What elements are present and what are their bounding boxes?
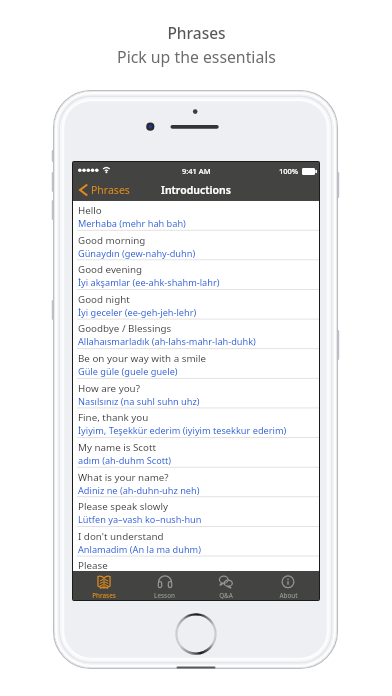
staticText: Phrases xyxy=(92,591,116,600)
staticText: Good night xyxy=(78,293,130,306)
button[interactable]: Goodbye / Blessings xyxy=(73,319,319,349)
staticText: Adiniz ne (ah-duhn-uhz neh) xyxy=(78,484,200,497)
button[interactable]: Back xyxy=(73,178,136,201)
button[interactable]: Q&A xyxy=(195,571,257,600)
staticText: Phrases xyxy=(91,183,130,197)
staticText: Nasılsınız (na suhl suhn uhz) xyxy=(78,395,200,408)
staticText: Phrases xyxy=(167,22,226,43)
button[interactable]: My name is Scott xyxy=(73,438,319,468)
other: Phrases xyxy=(97,574,111,589)
button[interactable]: Good morning xyxy=(73,231,319,261)
staticText: İyiyim, Teşekkür ederim (iyiyim tesekkur… xyxy=(78,424,287,437)
staticText: Günaydın (gew-nahy-duhn) xyxy=(78,247,196,260)
staticText: My name is Scott xyxy=(78,441,157,454)
staticText: İyi geceler (ee-geh-jeh-lehr) xyxy=(78,306,197,319)
other: Back xyxy=(79,184,88,196)
staticText: Lesson xyxy=(154,591,175,600)
button[interactable]: What is your name? xyxy=(73,468,319,498)
staticText: Lütfen ya–vash ko–nush-hun xyxy=(78,513,202,526)
button[interactable]: How are you? xyxy=(73,379,319,409)
staticText: About xyxy=(279,591,298,600)
staticText: Be on your way with a smile xyxy=(78,352,207,365)
staticText: Introductions xyxy=(161,183,231,197)
staticText: Goodbye / Blessings xyxy=(78,322,172,335)
staticText: Good evening xyxy=(78,263,143,276)
button[interactable]: Be on your way with a smile xyxy=(73,349,319,379)
staticText: İyi akşamlar (ee-ahk-shahm-lahr) xyxy=(78,276,220,289)
button[interactable]: About xyxy=(257,571,319,600)
button[interactable]: Hello xyxy=(73,201,319,231)
button[interactable]: Please xyxy=(73,556,319,586)
button[interactable]: I don't understand xyxy=(73,527,319,557)
staticText: Fine, thank you xyxy=(78,411,149,424)
staticText: Allahaısmarladık (ah-lahs-mahr-lah-duhk) xyxy=(78,335,256,348)
button[interactable]: Lesson xyxy=(134,571,195,600)
staticText: Good morning xyxy=(78,234,146,247)
staticText: Please speak slowly xyxy=(78,500,168,513)
staticText: What is your name? xyxy=(78,471,169,484)
other: Lesson xyxy=(158,574,172,589)
staticText: Q&A xyxy=(219,591,233,600)
other: About xyxy=(281,574,295,589)
button[interactable]: Please speak slowly xyxy=(73,497,319,527)
staticText: How are you? xyxy=(78,382,140,395)
staticText: 100% xyxy=(279,166,299,176)
staticText: 9:41 AM xyxy=(182,166,211,176)
button[interactable]: Fine, thank you xyxy=(73,408,319,438)
button[interactable]: Phrases xyxy=(73,571,134,600)
staticText: Please xyxy=(78,559,108,572)
button[interactable]: Good evening xyxy=(73,260,319,290)
button[interactable]: Good night xyxy=(73,290,319,320)
staticText: adım (ah-duhm Scott) xyxy=(78,454,172,467)
staticText: Anlamadim (An la ma duhm) xyxy=(78,543,201,556)
staticText: Hello xyxy=(78,204,102,217)
staticText: Güle güle (guele guele) xyxy=(78,365,178,378)
staticText: I don't understand xyxy=(78,530,164,543)
staticText: Pick up the essentials xyxy=(117,46,276,68)
staticText: Merhaba (mehr hah bah) xyxy=(78,217,186,230)
other: Q&A xyxy=(219,574,233,589)
